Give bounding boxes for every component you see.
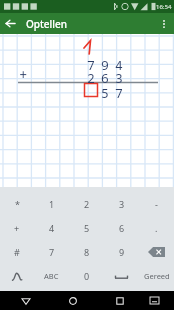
staticText: - (155, 198, 158, 210)
button[interactable]: Recents (110, 291, 129, 310)
button[interactable]: 8 (69, 240, 104, 264)
staticText: 4 (49, 222, 55, 234)
staticText: * (15, 198, 20, 210)
staticText: + (14, 222, 20, 234)
button[interactable]: - (139, 192, 174, 216)
button[interactable]: Back (0, 13, 21, 34)
staticText: 7 (49, 246, 55, 258)
staticText: 6 (119, 222, 125, 234)
button[interactable]: 2 (69, 192, 104, 216)
staticText: 5 (84, 222, 90, 234)
button[interactable]: Home (63, 291, 82, 310)
button[interactable]: 4 (34, 216, 69, 240)
staticText: 8 (84, 246, 90, 258)
staticText: 2 (84, 198, 90, 210)
button[interactable]: 7 (34, 240, 69, 264)
button[interactable]: # (0, 240, 34, 264)
staticText: # (14, 246, 20, 258)
staticText: Optellen (26, 17, 68, 31)
staticText: ABC (44, 271, 59, 281)
button[interactable]: ABC (34, 264, 69, 288)
staticText: 16:54 (156, 3, 172, 11)
staticText: + (19, 65, 28, 84)
button[interactable]: 3 (104, 192, 139, 216)
button[interactable]: . (139, 216, 174, 240)
staticText: 7 (115, 84, 123, 98)
button[interactable]: Delete (139, 240, 174, 264)
button[interactable]: + (0, 216, 34, 240)
staticText: 1 (49, 198, 55, 210)
button[interactable]: Symbols (0, 264, 34, 288)
button[interactable]: Space (104, 264, 139, 288)
button[interactable]: Gereed (139, 264, 174, 288)
button[interactable]: Keyboard (145, 291, 164, 310)
staticText: 5 (101, 84, 109, 98)
button[interactable]: * (0, 192, 34, 216)
staticText: 9 (119, 246, 125, 258)
staticText: 3 (115, 69, 123, 83)
button[interactable]: 1 (34, 192, 69, 216)
staticText: 3 (119, 198, 125, 210)
button[interactable]: Back (16, 291, 35, 310)
button[interactable]: 9 (104, 240, 139, 264)
staticText: . (155, 222, 158, 234)
staticText: 7 (87, 56, 95, 70)
staticText: 0 (84, 270, 90, 282)
staticText: Gereed (144, 271, 170, 281)
button[interactable]: 0 (69, 264, 104, 288)
button[interactable]: 6 (104, 216, 139, 240)
staticText: 4 (115, 56, 123, 70)
button[interactable]: More options (153, 13, 174, 34)
staticText: 9 (101, 56, 109, 70)
staticText: 6 (101, 69, 109, 83)
staticText: 2 (87, 69, 95, 83)
button[interactable]: 5 (69, 216, 104, 240)
